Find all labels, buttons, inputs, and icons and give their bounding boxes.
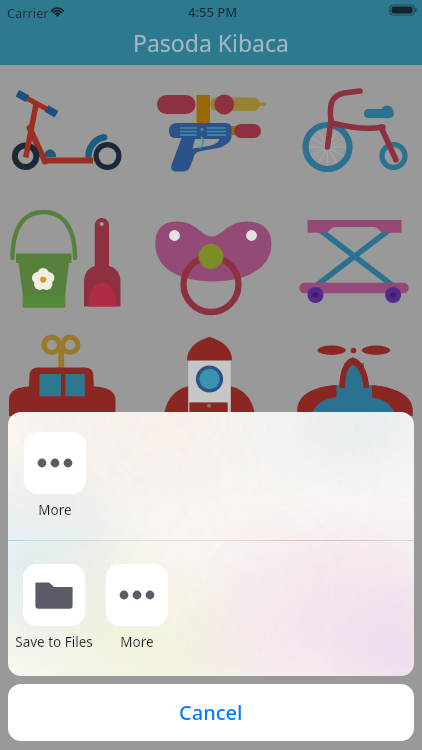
staticText: Pasoda Kibaca bbox=[133, 27, 289, 58]
button[interactable]: Save to Files bbox=[8, 564, 104, 664]
staticText: More bbox=[8, 501, 105, 519]
staticText: Cancel bbox=[179, 699, 243, 726]
staticText: More bbox=[87, 633, 187, 651]
staticText: Save to Files bbox=[8, 633, 104, 651]
button[interactable]: More bbox=[87, 564, 187, 664]
button[interactable]: Cancel bbox=[8, 684, 414, 741]
staticText: 4:55 PM bbox=[188, 3, 238, 21]
button[interactable]: More bbox=[8, 432, 105, 532]
staticText: Carrier bbox=[7, 4, 49, 21]
